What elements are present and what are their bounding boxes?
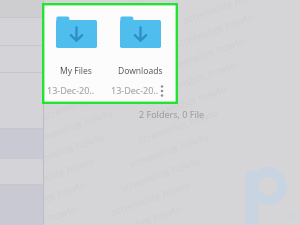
button[interactable] [0,46,43,72]
staticText: 13-Dec-20.. [47,84,95,96]
button[interactable] [0,0,43,17]
staticText: screenshot howto [0,9,46,51]
staticText: 2 Folders, 0 File [139,108,205,120]
staticText: screenshot howto [40,81,124,123]
staticText: screenshot howto [58,33,142,75]
staticText: screenshot howto [0,105,10,147]
staticText: screenshot howto [13,153,97,195]
staticText: screenshot howto [154,57,238,99]
staticText: screenshot howto [0,129,1,171]
staticText: Downloads [118,65,163,77]
staticText: screenshot howto [0,0,64,3]
staticText: screenshot howto [0,201,79,225]
button[interactable]: More options [156,81,172,101]
button[interactable] [0,18,43,45]
staticText: screenshot howto [31,105,115,147]
button[interactable]: My Files [47,4,111,103]
staticText: screenshot howto [4,177,88,219]
staticText: screenshot howto [22,129,106,171]
staticText: screenshot howto [163,33,247,75]
staticText: 13-Dec-20.. [111,84,159,96]
button[interactable]: Downloads [111,4,175,103]
staticText: screenshot howto [67,9,151,51]
staticText: screenshot howto [145,81,229,123]
staticText: screenshot howto [172,9,256,51]
staticText: screenshot howto [136,105,220,147]
staticText: screenshot howto [76,0,160,27]
staticText: screenshot howto [0,0,55,27]
staticText: My Files [60,65,92,77]
button[interactable] [0,73,43,128]
staticText: screenshot howto [49,57,133,99]
